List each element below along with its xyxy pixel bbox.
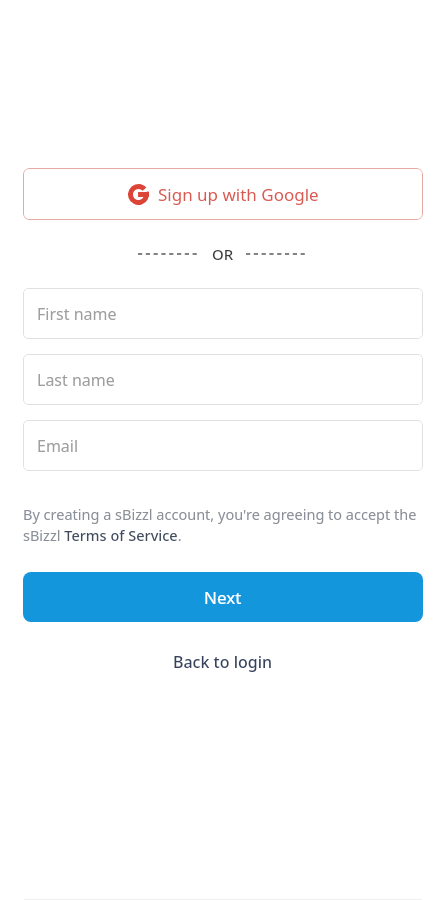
staticText: OR (212, 244, 234, 264)
staticText: Back to login (173, 651, 273, 673)
staticText: By creating a sBizzl account, you're agr… (23, 504, 423, 546)
button[interactable]: First name (23, 288, 423, 339)
staticText: Sign up with Google (158, 183, 319, 206)
other: Google (128, 184, 149, 205)
staticText: Next (204, 586, 242, 609)
staticText: Email (37, 435, 79, 457)
button[interactable]: Back to login (23, 646, 423, 678)
staticText: Last name (37, 369, 115, 391)
button[interactable]: Next (23, 572, 423, 622)
button[interactable]: Email (23, 420, 423, 471)
staticText: First name (37, 303, 117, 325)
button[interactable]: Google (23, 168, 423, 220)
button[interactable]: Last name (23, 354, 423, 405)
